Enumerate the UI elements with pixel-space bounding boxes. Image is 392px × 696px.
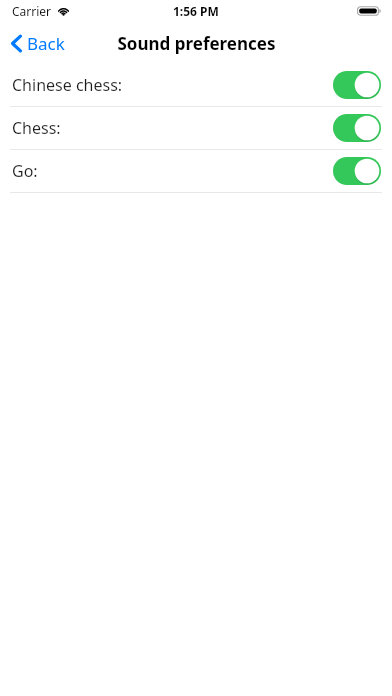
staticText: Sound preferences bbox=[117, 32, 276, 55]
staticText: Go: bbox=[12, 160, 38, 182]
button[interactable]: Chinese chess: bbox=[0, 64, 392, 106]
staticText: 1:56 PM bbox=[173, 3, 219, 19]
staticText: Chess: bbox=[12, 117, 61, 139]
button[interactable]: Back bbox=[0, 25, 77, 62]
staticText: Carrier bbox=[12, 3, 52, 19]
staticText: Chinese chess: bbox=[12, 74, 123, 96]
button[interactable]: Toggle sound for Chinese chess: bbox=[333, 71, 381, 99]
button[interactable]: Toggle sound for Go: bbox=[333, 157, 381, 185]
button[interactable]: Toggle sound for Chess: bbox=[333, 114, 381, 142]
button[interactable]: Chess: bbox=[0, 107, 392, 149]
button[interactable]: Go: bbox=[0, 150, 392, 192]
staticText: Back bbox=[27, 32, 65, 55]
